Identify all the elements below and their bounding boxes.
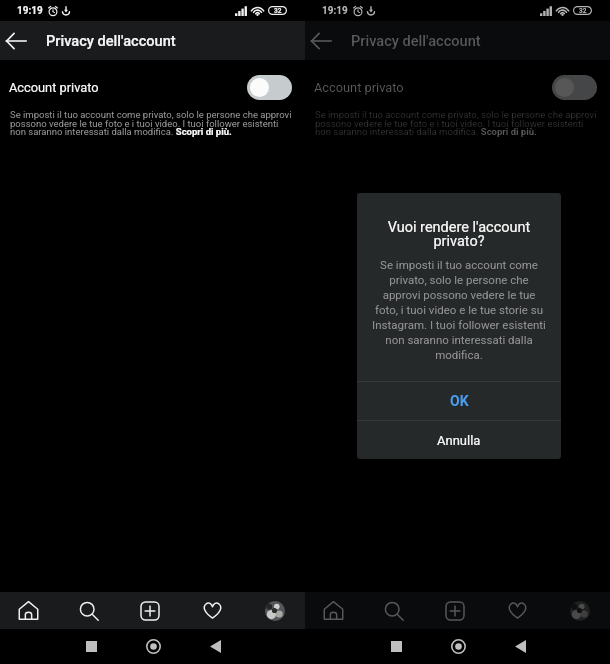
staticText: Se imposti il tuo account come privato, … bbox=[315, 109, 598, 137]
staticText: Privacy dell'account bbox=[351, 32, 481, 49]
staticText: OK bbox=[450, 393, 469, 409]
staticText: 19:19 bbox=[17, 5, 43, 17]
staticText: 32 bbox=[579, 7, 587, 15]
button[interactable]: Recents bbox=[376, 629, 416, 664]
button[interactable]: Create bbox=[433, 592, 477, 629]
staticText: Se imposti il tuo account come privato, … bbox=[371, 258, 547, 361]
button[interactable]: Account privato bbox=[0, 60, 305, 115]
button[interactable]: Create bbox=[128, 592, 172, 629]
button[interactable]: Back bbox=[195, 629, 235, 664]
staticText: 19:19 bbox=[322, 5, 348, 17]
button[interactable]: Search bbox=[67, 592, 111, 629]
staticText: Vuoi rendere l'account privato? bbox=[376, 219, 542, 250]
button[interactable]: Activity bbox=[495, 592, 539, 629]
button[interactable]: OK bbox=[357, 382, 561, 420]
button[interactable]: Home bbox=[6, 592, 50, 629]
button[interactable]: Profile bbox=[253, 592, 297, 629]
button[interactable]: Annulla bbox=[357, 421, 561, 459]
button[interactable]: Home bbox=[133, 629, 173, 664]
staticText: Account privato bbox=[314, 80, 404, 95]
button[interactable]: Home bbox=[311, 592, 355, 629]
button[interactable]: Back bbox=[305, 21, 336, 60]
button[interactable]: Activity bbox=[190, 592, 234, 629]
button[interactable]: Back bbox=[0, 21, 31, 60]
button[interactable]: Home bbox=[438, 629, 478, 664]
staticText: 32 bbox=[274, 7, 282, 15]
button[interactable]: Profile bbox=[558, 592, 602, 629]
button[interactable]: Account privato bbox=[305, 60, 610, 115]
button[interactable]: Back bbox=[500, 629, 540, 664]
button[interactable]: Account privato bbox=[552, 75, 597, 100]
staticText: Annulla bbox=[437, 433, 481, 448]
button[interactable]: Account privato bbox=[247, 75, 292, 100]
staticText: Account privato bbox=[9, 80, 99, 95]
button[interactable]: Recents bbox=[71, 629, 111, 664]
button[interactable]: Search bbox=[372, 592, 416, 629]
staticText: Se imposti il tuo account come privato, … bbox=[10, 109, 293, 137]
staticText: Privacy dell'account bbox=[46, 32, 176, 49]
